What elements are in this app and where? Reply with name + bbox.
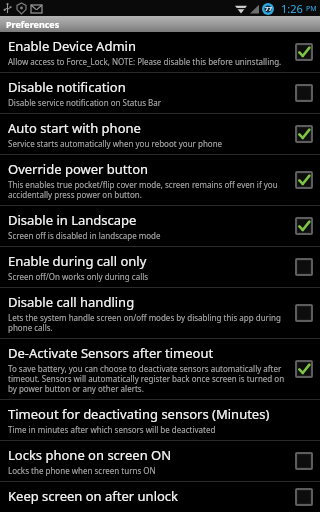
staticText: Service starts automatically when you re… <box>8 138 223 149</box>
staticText: Disable service notification on Status B… <box>8 97 162 108</box>
staticText: Time in minutes after which sensors will… <box>8 424 216 435</box>
staticText: 77 <box>265 5 272 13</box>
button[interactable]: Checked <box>295 360 313 378</box>
button[interactable]: Enable Device Admin <box>0 32 320 72</box>
button[interactable]: Auto start with phone <box>0 114 320 154</box>
button[interactable]: Unchecked <box>295 304 313 322</box>
staticText: Screen off is disabled in landscape mode <box>8 230 161 241</box>
staticText: Enable during call only <box>8 252 147 270</box>
button[interactable]: Unchecked <box>295 258 313 276</box>
staticText: This enables true pocket/flip cover mode… <box>8 179 289 200</box>
button[interactable]: Enable during call only <box>0 247 320 287</box>
button[interactable]: Timeout for deactivating sensors (Minute… <box>0 400 320 440</box>
button[interactable]: Override power button <box>0 155 320 205</box>
staticText: Auto start with phone <box>8 119 141 137</box>
staticText: De-Activate Sensors after timeout <box>8 344 214 362</box>
button[interactable]: Disable notification <box>0 73 320 113</box>
staticText: Preferences <box>6 18 60 30</box>
button[interactable]: Unchecked <box>295 452 313 470</box>
staticText: Locks phone on screen ON <box>8 446 172 464</box>
staticText: Timeout for deactivating sensors (Minute… <box>8 405 270 423</box>
staticText: Keep screen on after unlock <box>8 487 179 505</box>
staticText: Override power button <box>8 160 149 178</box>
staticText: Enable Device Admin <box>8 37 136 55</box>
button[interactable]: Checked <box>295 171 313 189</box>
staticText: To save battery, you can choose to deact… <box>8 363 289 394</box>
staticText: 1:26 <box>281 1 303 16</box>
button[interactable]: Disable call handling <box>0 288 320 338</box>
button[interactable]: Locks phone on screen ON <box>0 441 320 481</box>
button[interactable]: Checked <box>295 43 313 61</box>
staticText: Allow access to Force_Lock, NOTE: Please… <box>8 56 282 67</box>
button[interactable]: De-Activate Sensors after timeout <box>0 339 320 399</box>
button[interactable]: Unchecked <box>295 488 313 506</box>
button[interactable]: Keep screen on after unlock <box>0 482 320 512</box>
staticText: Locks the phone when screen turns ON <box>8 465 156 476</box>
button[interactable]: Checked <box>295 217 313 235</box>
button[interactable]: Unchecked <box>295 84 313 102</box>
staticText: PM <box>306 4 317 14</box>
staticText: Disable call handling <box>8 293 135 311</box>
button[interactable]: Disable in Landscape <box>0 206 320 246</box>
staticText: Disable in Landscape <box>8 211 137 229</box>
staticText: Screen off/On works only during calls <box>8 271 149 282</box>
button[interactable]: Checked <box>295 125 313 143</box>
staticText: Lets the system handle screen on/off mod… <box>8 312 289 333</box>
staticText: Disable notification <box>8 78 126 96</box>
